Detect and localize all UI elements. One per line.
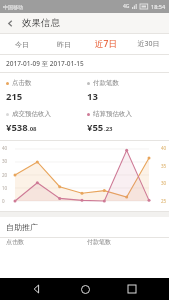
button[interactable]: Back: [26, 278, 48, 300]
button[interactable]: 今日: [0, 34, 43, 54]
button[interactable]: 付款笔数: [87, 79, 169, 103]
staticText: 13: [87, 90, 98, 103]
button[interactable]: Back: [0, 13, 20, 33]
button[interactable]: 结算预估收入: [87, 110, 169, 134]
staticText: 215: [6, 90, 23, 103]
staticText: 18:54: [151, 3, 166, 10]
button[interactable]: 点击数: [6, 79, 87, 103]
staticText: 付款笔数: [93, 79, 119, 87]
staticText: 2017-01-09 至 2017-01-15: [6, 59, 84, 68]
staticText: .23: [104, 125, 113, 133]
button[interactable]: Recents: [121, 278, 143, 300]
staticText: 昨日: [57, 40, 71, 49]
staticText: 效果信息: [22, 17, 60, 29]
staticText: ¥55: [87, 121, 104, 134]
button[interactable]: 昨日: [43, 34, 85, 54]
staticText: 40: [161, 145, 167, 151]
staticText: 今日: [15, 40, 29, 49]
button[interactable]: 近30日: [127, 34, 169, 54]
staticText: 付款笔数: [87, 238, 169, 246]
button[interactable]: 近7日: [85, 34, 127, 54]
staticText: 自助推广: [6, 222, 38, 232]
staticText: 0: [2, 198, 5, 204]
staticText: ¥538: [6, 121, 28, 134]
staticText: 10: [2, 185, 8, 191]
staticText: 中国移动: [3, 4, 23, 10]
staticText: 30: [161, 180, 167, 186]
staticText: 4G: [123, 3, 130, 10]
staticText: 结算预估收入: [93, 110, 132, 118]
staticText: .08: [28, 125, 37, 133]
staticText: 25: [161, 198, 167, 204]
staticText: 点击数: [12, 79, 32, 87]
button[interactable]: 成交预估收入: [6, 110, 87, 134]
staticText: 30: [2, 158, 8, 164]
staticText: 35: [161, 163, 167, 169]
staticText: 近7日: [95, 38, 117, 50]
staticText: 20: [2, 172, 8, 178]
staticText: 近30日: [137, 39, 160, 49]
staticText: 点击数: [6, 238, 87, 246]
button[interactable]: Home: [74, 278, 96, 300]
staticText: 40: [2, 145, 8, 151]
staticText: 成交预估收入: [12, 110, 51, 118]
